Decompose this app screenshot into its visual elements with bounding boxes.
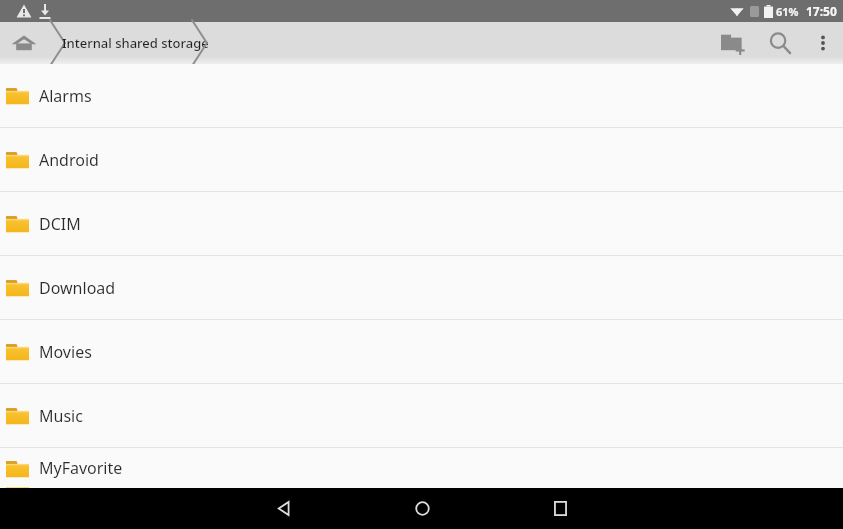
staticText: Movies [39,341,92,363]
button[interactable]: More options [803,22,843,64]
button[interactable]: Download [0,256,843,319]
button[interactable]: Alarms [0,64,843,127]
staticText: Download [39,277,116,299]
button[interactable]: Recent apps [491,488,629,529]
button[interactable]: Back [215,488,353,529]
staticText: Android [39,149,99,171]
button[interactable]: New folder [709,22,757,64]
button[interactable]: Home [353,488,491,529]
staticText: 17:50 [806,3,837,19]
button[interactable]: Internal shared storage [62,22,209,64]
button[interactable]: Android [0,128,843,191]
button[interactable]: Music [0,384,843,447]
staticText: MyFavorite [39,457,123,479]
staticText: 61% [776,4,799,19]
button[interactable]: DCIM [0,192,843,255]
staticText: Music [39,405,83,427]
button[interactable]: Movies [0,320,843,383]
staticText: Alarms [39,85,92,107]
button[interactable]: Home [0,22,48,64]
button[interactable]: Search [757,22,803,64]
button[interactable]: MyFavorite [0,448,843,488]
staticText: Internal shared storage [62,34,209,52]
staticText: DCIM [39,213,81,235]
